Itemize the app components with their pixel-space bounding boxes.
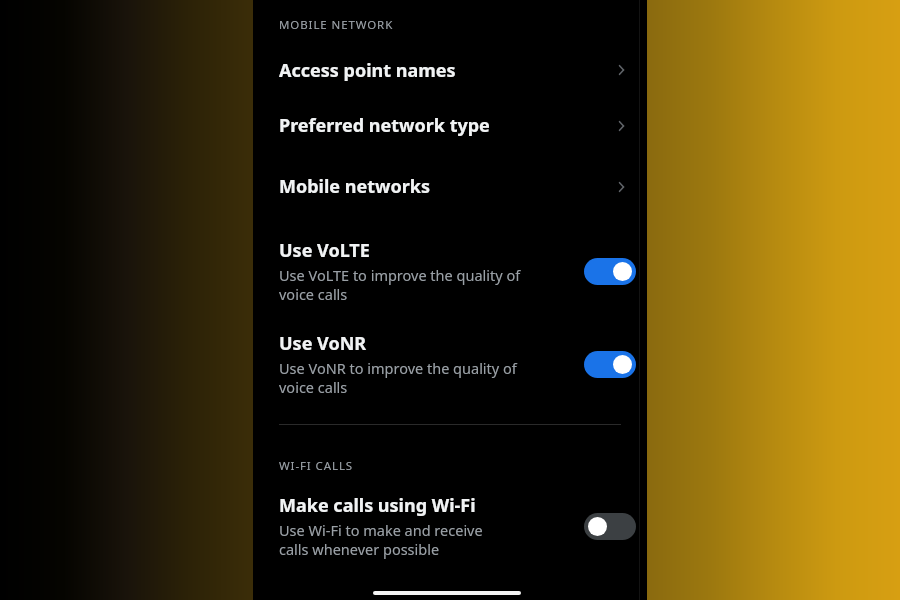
staticText: Use VoNR <box>279 331 367 356</box>
staticText: Access point names <box>279 58 612 83</box>
staticText: MOBILE NETWORK <box>279 17 394 33</box>
staticText: Use VoLTE to improve the quality of voic… <box>279 265 541 304</box>
button[interactable]: Use VoLTE <box>253 232 647 310</box>
staticText: Use VoNR to improve the quality of voice… <box>279 358 541 397</box>
button[interactable]: Make calls using Wi-Fi <box>253 487 647 565</box>
button[interactable]: Access point names <box>253 45 647 95</box>
staticText: Use Wi-Fi to make and receive calls when… <box>279 520 511 559</box>
staticText: Make calls using Wi-Fi <box>279 493 476 518</box>
button[interactable]: Use VoNR <box>253 325 647 403</box>
staticText: Preferred network type <box>279 113 612 138</box>
staticText: Mobile networks <box>279 174 612 199</box>
staticText: Use VoLTE <box>279 238 370 263</box>
button[interactable]: Make calls using Wi-Fi <box>584 511 636 541</box>
button[interactable]: Use VoNR <box>584 349 636 379</box>
button[interactable]: Use VoLTE <box>584 256 636 286</box>
staticText: WI-FI CALLS <box>279 458 354 474</box>
button[interactable]: Preferred network type <box>253 95 647 156</box>
button[interactable]: Mobile networks <box>253 156 647 217</box>
